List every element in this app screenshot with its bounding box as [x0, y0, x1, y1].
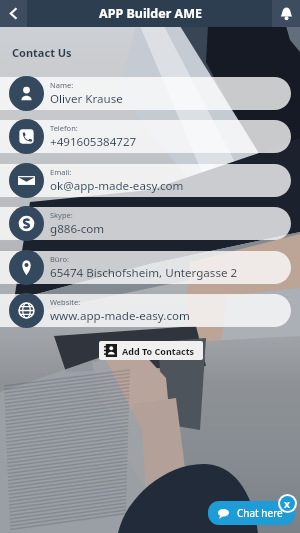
staticText: ok@app-made-easy.com [50, 178, 184, 194]
button[interactable]: Back [0, 0, 27, 27]
staticText: 65474 Bischofsheim, Untergasse 2 [50, 265, 238, 281]
staticText: Contact Us [12, 45, 72, 60]
button[interactable]: Skype: [0, 206, 300, 241]
button[interactable]: Telefon: [0, 119, 300, 154]
staticText: X [284, 498, 291, 510]
staticText: Oliver Krause [50, 91, 123, 107]
staticText: Add To Contacts [122, 345, 195, 357]
staticText: Büro: [50, 254, 70, 264]
staticText: Skype: [50, 210, 73, 220]
staticText: www.app-made-easy.com [50, 308, 190, 324]
button[interactable]: Website: [0, 293, 300, 328]
staticText: +491605384727 [50, 134, 137, 150]
button[interactable]: Büro: [0, 250, 300, 285]
staticText: APP Builder AME [99, 5, 202, 22]
button[interactable]: Name: [0, 76, 300, 111]
button[interactable]: Close chat [280, 496, 295, 511]
button[interactable]: Chat here [208, 501, 295, 525]
staticText: g886-com [50, 221, 105, 237]
staticText: Email: [50, 167, 72, 177]
button[interactable]: Add To Contacts [99, 341, 203, 360]
staticText: Website: [50, 297, 81, 307]
staticText: Name: [50, 80, 74, 90]
staticText: Chat here [237, 506, 283, 520]
button[interactable]: Notifications [272, 0, 300, 27]
button[interactable]: Email: [0, 163, 300, 198]
staticText: Telefon: [50, 123, 78, 133]
